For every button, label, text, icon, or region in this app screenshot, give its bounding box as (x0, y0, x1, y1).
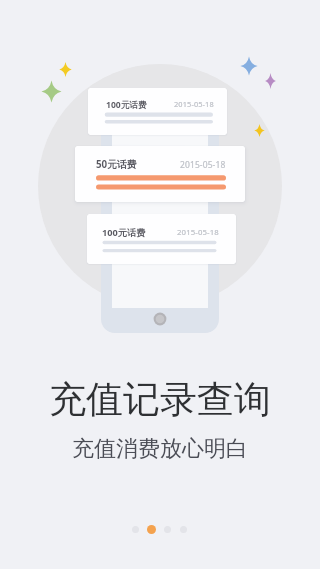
button[interactable]: Go to page (177, 523, 189, 535)
button[interactable]: 100元话费 (88, 88, 227, 135)
button[interactable]: Go to page (161, 523, 173, 535)
staticText: 2015-05-18 (180, 159, 226, 171)
staticText: 充值记录查询 (49, 376, 271, 423)
staticText: 100元话费 (106, 99, 147, 111)
button[interactable]: Current page (145, 523, 157, 535)
button[interactable]: 50元话费 (75, 146, 245, 202)
staticText: 2015-05-18 (174, 99, 214, 109)
button[interactable]: Go to page (129, 523, 141, 535)
staticText: 充值消费放心明白 (72, 435, 248, 463)
staticText: 100元话费 (102, 226, 146, 239)
button[interactable]: 100元话费 (87, 214, 236, 264)
staticText: 2015-05-18 (177, 227, 219, 238)
staticText: 50元话费 (96, 158, 137, 171)
